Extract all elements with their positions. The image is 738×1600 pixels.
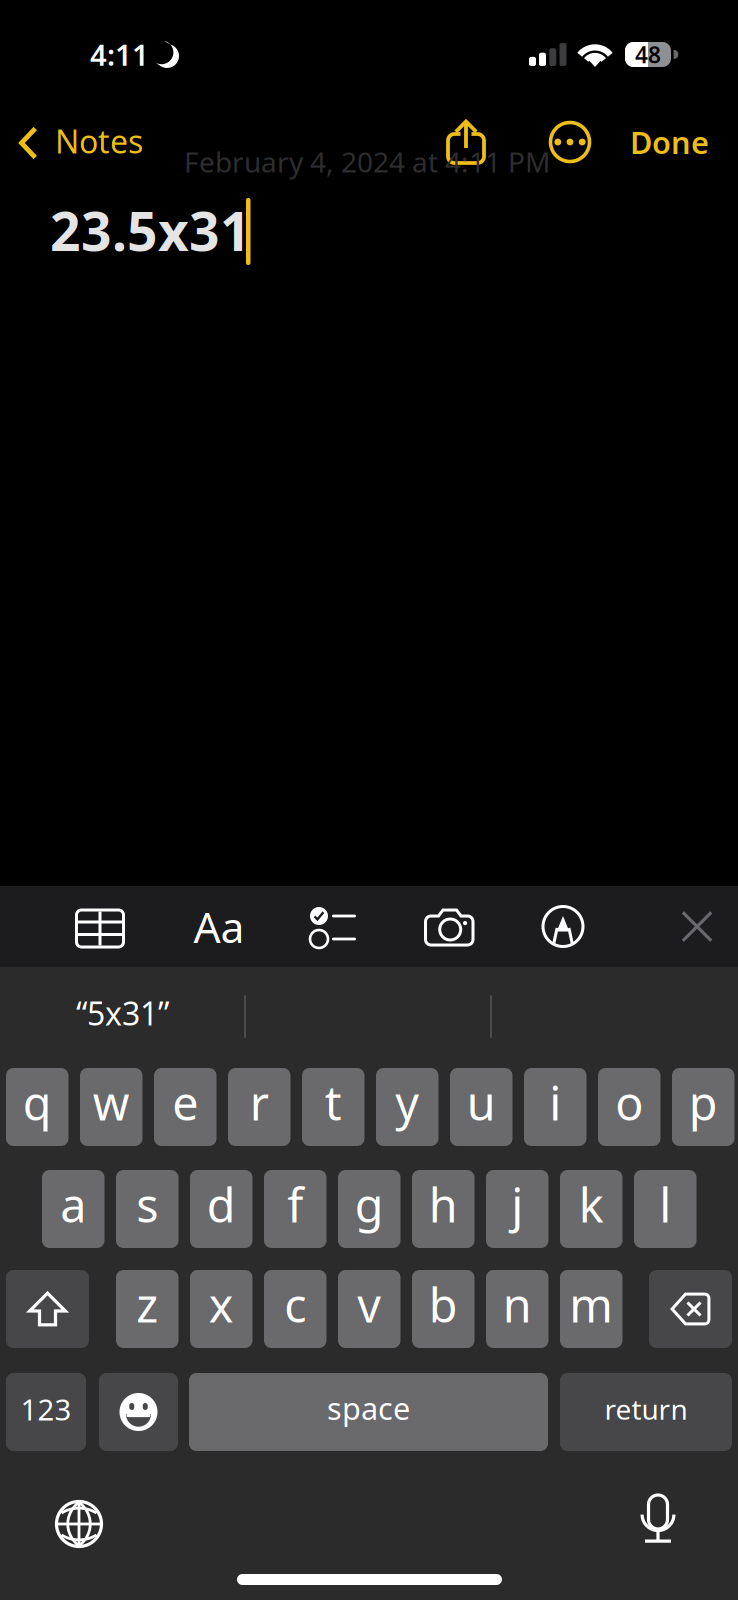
staticText: v [357,1273,381,1335]
staticText: k [579,1173,604,1235]
button[interactable]: Delete [649,1270,732,1348]
button[interactable]: Next keyboard [37,1482,121,1566]
button[interactable]: Camera [408,887,492,968]
staticText: 4:11 [90,35,149,74]
staticText: g [355,1173,384,1235]
button[interactable]: “5x31” [0,979,245,1053]
button[interactable]: return [560,1373,732,1451]
staticText: s [136,1173,158,1235]
staticText: f [287,1173,303,1235]
button[interactable]: a [42,1170,104,1248]
staticText: t [325,1071,342,1133]
button[interactable]: v [338,1270,400,1348]
button[interactable]: h [412,1170,474,1248]
staticText: b [429,1273,458,1335]
button[interactable]: Emoji [99,1373,178,1451]
staticText: y [395,1071,419,1133]
staticText: Aa [193,898,244,955]
button[interactable]: u [450,1068,512,1146]
button[interactable]: Markup [521,886,605,967]
staticText: 123 [20,1389,71,1428]
button[interactable]: e [154,1068,216,1146]
button[interactable]: r [228,1068,290,1146]
button[interactable]: n [486,1270,548,1348]
staticText: i [549,1071,561,1133]
staticText: February 4, 2024 at 4:11 PM [184,143,550,180]
staticText: “5x31” [76,992,169,1034]
staticText: 23.5x31 [50,195,251,266]
staticText: q [23,1071,52,1133]
staticText: space [327,1388,410,1428]
button[interactable]: s [116,1170,178,1248]
button[interactable]: Format [177,886,261,967]
staticText: h [429,1173,458,1235]
staticText: e [172,1071,198,1133]
staticText: u [467,1071,496,1133]
staticText: l [659,1173,671,1235]
staticText: Notes [55,120,143,162]
staticText: Done [630,122,709,162]
staticText: a [60,1173,86,1235]
button[interactable]: k [560,1170,622,1248]
button[interactable]: Hide keyboard [657,886,737,967]
button[interactable]: d [190,1170,252,1248]
button[interactable]: b [412,1270,474,1348]
button[interactable]: m [560,1270,622,1348]
staticText: z [136,1273,158,1335]
button[interactable]: c [264,1270,326,1348]
button[interactable]: Done [618,113,721,171]
staticText: o [615,1071,643,1133]
staticText: w [93,1071,130,1133]
staticText: j [511,1173,523,1235]
staticText: return [604,1390,687,1428]
button[interactable]: Dictate [616,1478,700,1562]
button[interactable]: o [598,1068,660,1146]
button[interactable]: Share [433,112,499,170]
button[interactable]: q [6,1068,68,1146]
button[interactable]: 123 [6,1373,86,1451]
button[interactable]: space [189,1373,548,1451]
button[interactable]: y [376,1068,438,1146]
button[interactable]: l [634,1170,696,1248]
staticText: d [207,1173,236,1235]
staticText: m [569,1273,613,1335]
button[interactable]: i [524,1068,586,1146]
button[interactable]: f [264,1170,326,1248]
button[interactable]: t [302,1068,364,1146]
button[interactable]: w [80,1068,142,1146]
staticText: n [503,1273,532,1335]
button[interactable]: Checklist [291,887,375,968]
staticText: p [689,1071,718,1133]
button[interactable]: g [338,1170,400,1248]
button[interactable]: j [486,1170,548,1248]
staticText: c [284,1273,306,1335]
button[interactable]: More [540,113,600,171]
staticText: x [209,1273,234,1335]
button[interactable]: Shift [6,1270,89,1348]
button[interactable]: x [190,1270,252,1348]
staticText: 48 [635,39,661,69]
staticText: r [250,1071,269,1133]
button[interactable]: p [672,1068,734,1146]
button[interactable]: Notes [19,113,165,171]
button[interactable]: z [116,1270,178,1348]
button[interactable]: Table [58,888,142,969]
